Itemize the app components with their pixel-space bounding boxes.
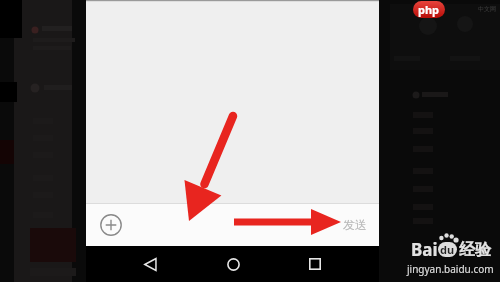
- button[interactable]: Add attachment: [98, 212, 124, 238]
- button[interactable]: Home: [215, 246, 251, 282]
- button[interactable]: 发送: [343, 217, 367, 232]
- staticText: 发送: [343, 217, 367, 232]
- staticText: 经验: [459, 240, 491, 260]
- staticText: jingyan.baidu.com: [407, 262, 494, 276]
- staticText: 中文网: [478, 5, 496, 13]
- button[interactable]: Back: [132, 246, 168, 282]
- staticText: php: [418, 2, 440, 17]
- staticText: du: [440, 242, 455, 257]
- button[interactable]: Recent apps: [297, 246, 333, 282]
- staticText: Bai: [411, 238, 438, 261]
